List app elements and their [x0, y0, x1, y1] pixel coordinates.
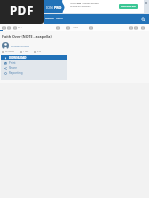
staticText: ION	[46, 5, 53, 10]
button[interactable]: Search	[140, 16, 146, 22]
staticText: member benefits	[82, 2, 99, 5]
staticText: Unlock	[70, 2, 77, 5]
button[interactable]: Tools	[134, 26, 138, 30]
button[interactable]: Zoom in	[66, 26, 70, 30]
staticText: 26 views	[5, 50, 15, 53]
staticText: to grow as a musician	[70, 5, 91, 8]
staticText: 100%	[73, 26, 79, 29]
staticText: Start Free Trial	[121, 5, 136, 8]
button[interactable]: Rotate	[89, 26, 93, 30]
staticText: Reporting	[9, 71, 23, 75]
button[interactable]: Reporting	[1, 70, 67, 75]
button[interactable]: Print	[1, 60, 67, 65]
button[interactable]: Log in	[56, 17, 63, 20]
staticText: 0 dl	[37, 50, 41, 53]
staticText: Share	[9, 66, 17, 70]
button[interactable]: DOWNLOAD	[1, 55, 67, 60]
button[interactable]: Claudio Dumas	[2, 42, 29, 49]
button[interactable]: Page	[13, 26, 17, 30]
button[interactable]: Register	[45, 17, 54, 20]
staticText: of 1	[18, 26, 22, 29]
button[interactable]: Next page	[7, 26, 11, 30]
staticText: Print	[9, 61, 16, 65]
staticText: PRO	[53, 5, 62, 10]
button[interactable]: Previous page	[2, 26, 6, 30]
staticText: 1 fav	[23, 50, 29, 53]
staticText: PRO	[77, 2, 82, 5]
button[interactable]: Start Free Trial	[119, 4, 138, 9]
button[interactable]: Fullscreen	[141, 26, 145, 30]
staticText: PDF	[10, 3, 34, 19]
button[interactable]: Layout	[129, 26, 133, 30]
button[interactable]: Close	[144, 1, 148, 5]
staticText: Faith Over (NOTE - acapella)	[2, 34, 52, 39]
button[interactable]: Share	[1, 65, 67, 70]
staticText: DOWNLOAD	[9, 56, 27, 60]
staticText: Claudio Dumas	[11, 44, 29, 47]
button[interactable]: Zoom out	[56, 26, 60, 30]
